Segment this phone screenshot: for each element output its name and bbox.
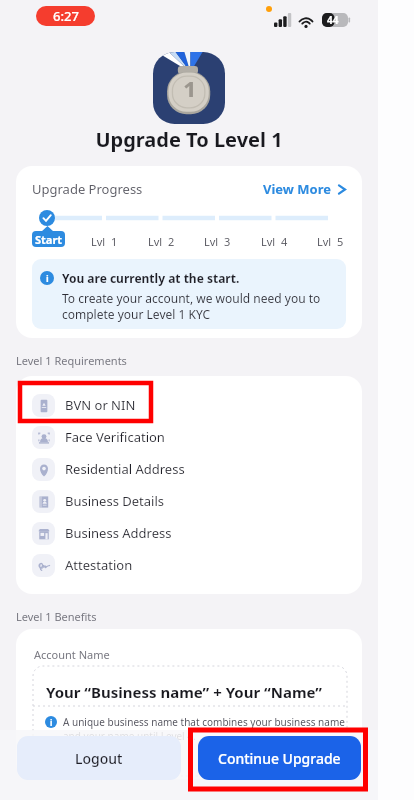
staticText: i — [50, 717, 53, 728]
button[interactable]: Business Details — [16, 485, 362, 517]
staticText: Attestation — [65, 556, 133, 574]
button[interactable]: BVN or NIN — [16, 389, 362, 421]
staticText: Start — [35, 232, 63, 247]
button[interactable]: Continue Upgrade — [198, 736, 361, 780]
staticText: Residential Address — [65, 460, 185, 478]
staticText: You are currently at the start. — [62, 270, 240, 286]
staticText: Lvl 5 — [317, 234, 344, 249]
staticText: Your “Business name” + Your “Name” — [46, 682, 323, 702]
staticText: 44 — [327, 13, 339, 27]
button[interactable]: Attestation — [16, 549, 362, 581]
staticText: i — [46, 272, 49, 284]
staticText: Upgrade To Level 1 — [0, 126, 378, 153]
staticText: Lvl 2 — [148, 234, 175, 249]
staticText: To create your account, we would need yo… — [62, 290, 346, 323]
staticText: Face Verification — [65, 428, 165, 446]
staticText: Business Details — [65, 492, 165, 510]
staticText: Account Name — [34, 647, 110, 662]
button[interactable]: View More — [263, 180, 346, 198]
staticText: Upgrade Progress — [32, 180, 143, 198]
staticText: Lvl 3 — [204, 234, 231, 249]
staticText: View More — [263, 180, 332, 198]
staticText: Business Address — [65, 524, 172, 542]
staticText: BVN or NIN — [65, 396, 136, 414]
button[interactable]: Face Verification — [16, 421, 362, 453]
staticText: Lvl 1 — [91, 234, 118, 249]
staticText: Logout — [75, 749, 123, 768]
staticText: 6:27 — [53, 7, 79, 25]
staticText: 1 — [183, 73, 197, 97]
staticText: A unique business name that combines you… — [63, 715, 345, 743]
staticText: Lvl 4 — [261, 234, 288, 249]
staticText: Continue Upgrade — [218, 749, 341, 768]
button[interactable]: Logout — [17, 736, 181, 780]
button[interactable]: Business Address — [16, 517, 362, 549]
staticText: Level 1 Benefits — [16, 609, 97, 624]
button[interactable]: Residential Address — [16, 453, 362, 485]
staticText: Level 1 Requirements — [16, 353, 127, 368]
